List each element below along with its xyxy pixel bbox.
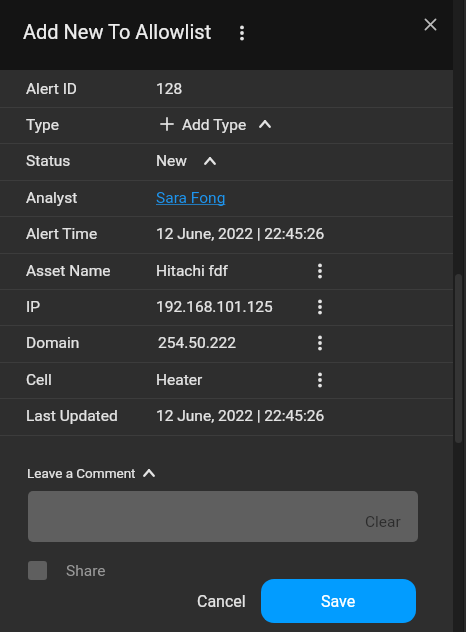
button[interactable]: More options bbox=[310, 370, 330, 390]
staticText: 12 June, 2022 | 22:45:26 bbox=[156, 407, 325, 425]
button[interactable]: Cancel bbox=[181, 582, 262, 621]
staticText: Type bbox=[26, 116, 59, 134]
staticText: 192.168.101.125 bbox=[156, 298, 273, 316]
button[interactable]: Cell bbox=[0, 362, 466, 398]
staticText: Heater bbox=[156, 371, 203, 389]
staticText: Analyst bbox=[26, 189, 78, 207]
staticText: Alert ID bbox=[26, 80, 78, 98]
button[interactable]: Leave a Comment bbox=[27, 465, 156, 481]
button[interactable]: Share bbox=[28, 561, 106, 580]
button[interactable]: Close bbox=[418, 12, 443, 37]
staticText: Cancel bbox=[197, 592, 246, 611]
staticText: Leave a Comment bbox=[27, 465, 136, 481]
staticText: Asset Name bbox=[26, 262, 111, 280]
staticText: Clear bbox=[365, 513, 401, 531]
staticText: Hitachi fdf bbox=[156, 262, 228, 280]
button[interactable]: More options bbox=[232, 23, 252, 43]
staticText: Cell bbox=[26, 371, 52, 389]
button[interactable]: More options bbox=[310, 297, 330, 317]
staticText: Share bbox=[66, 562, 106, 580]
button[interactable]: More options bbox=[310, 261, 330, 281]
button[interactable]: More options bbox=[310, 333, 330, 353]
button[interactable]: Last Updated bbox=[0, 398, 466, 434]
button[interactable]: Save bbox=[261, 579, 416, 623]
staticText: Add New To Allowlist bbox=[23, 20, 212, 43]
button[interactable]: Add Type bbox=[159, 116, 272, 134]
button[interactable]: Clear bbox=[28, 491, 418, 542]
staticText: New bbox=[156, 152, 187, 170]
button[interactable]: Status bbox=[0, 143, 466, 179]
button[interactable]: Type bbox=[0, 107, 466, 143]
staticText: Status bbox=[26, 152, 71, 170]
staticText: 128 bbox=[156, 80, 183, 98]
button[interactable]: Asset Name bbox=[0, 253, 466, 289]
staticText: IP bbox=[26, 298, 40, 316]
staticText: Add Type bbox=[182, 116, 247, 134]
button[interactable]: New bbox=[156, 152, 217, 170]
button[interactable]: IP bbox=[0, 289, 466, 325]
staticText: Alert Time bbox=[26, 225, 98, 243]
staticText: Domain bbox=[26, 334, 80, 352]
button[interactable]: Sara Fong bbox=[156, 189, 226, 207]
staticText: 254.50.222 bbox=[158, 334, 236, 352]
staticText: Last Updated bbox=[26, 407, 118, 425]
button[interactable]: Domain bbox=[0, 325, 466, 361]
staticText: 12 June, 2022 | 22:45:26 bbox=[156, 225, 325, 243]
button[interactable]: Alert ID bbox=[0, 71, 466, 107]
button[interactable]: Alert Time bbox=[0, 216, 466, 252]
staticText: Save bbox=[321, 592, 356, 611]
button[interactable]: Analyst bbox=[0, 180, 466, 216]
